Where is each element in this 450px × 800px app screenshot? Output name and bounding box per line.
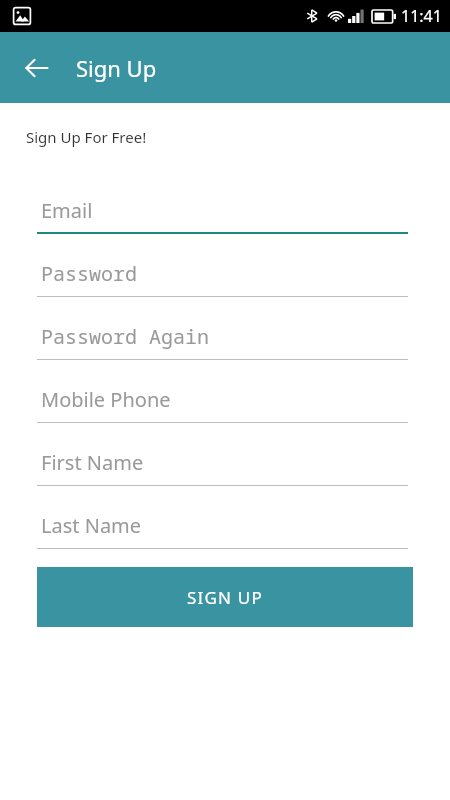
staticText: SIGN UP xyxy=(187,586,263,609)
button[interactable]: Last Name xyxy=(37,486,408,549)
button[interactable]: Password Again xyxy=(37,297,408,360)
staticText: Mobile Phone xyxy=(41,386,171,413)
button[interactable]: Password xyxy=(37,234,408,297)
staticText: Last Name xyxy=(41,512,142,539)
staticText: Password xyxy=(41,260,137,287)
staticText: First Name xyxy=(41,449,144,476)
button[interactable]: First Name xyxy=(37,423,408,486)
staticText: Password Again xyxy=(41,323,209,350)
button[interactable]: Back xyxy=(13,44,61,92)
button[interactable]: SIGN UP xyxy=(37,567,413,627)
staticText: 11:41 xyxy=(401,5,442,27)
staticText: Email xyxy=(41,197,93,224)
button[interactable]: Email xyxy=(37,171,408,234)
staticText: Sign Up For Free! xyxy=(26,127,147,147)
button[interactable]: Mobile Phone xyxy=(37,360,408,423)
staticText: Sign Up xyxy=(76,53,157,83)
